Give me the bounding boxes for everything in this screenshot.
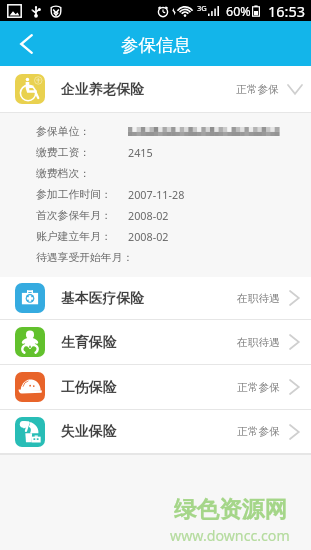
button[interactable]: 生育保险: [0, 320, 311, 364]
staticText: 生育保险: [61, 334, 117, 351]
staticText: 失业保险: [61, 423, 117, 440]
staticText: 基本医疗保险: [61, 290, 144, 307]
staticText: 正常参保: [236, 83, 279, 96]
button[interactable]: 工伤保险: [0, 365, 311, 409]
staticText: 待遇享受开始年月：: [36, 251, 134, 265]
staticText: 缴费工资：: [36, 146, 90, 160]
staticText: www.downcc.com: [170, 526, 290, 545]
button[interactable]: Back: [0, 21, 52, 66]
staticText: 16:53: [268, 1, 306, 21]
staticText: 在职待遇: [237, 336, 280, 349]
staticText: 工伤保险: [61, 379, 117, 396]
staticText: 2415: [128, 145, 153, 160]
staticText: 正常参保: [237, 381, 280, 394]
staticText: 在职待遇: [237, 292, 280, 305]
staticText: 2008-02: [128, 229, 169, 244]
staticText: 首次参保年月：: [36, 209, 112, 223]
staticText: 60%: [226, 3, 251, 20]
staticText: 3G: [197, 3, 207, 13]
staticText: 2007-11-28: [128, 187, 185, 202]
staticText: 参加工作时间：: [36, 188, 112, 202]
button[interactable]: 失业保险: [0, 410, 311, 453]
staticText: 账户建立年月：: [36, 230, 112, 244]
staticText: 企业养老保险: [61, 81, 144, 98]
staticText: 参保单位：: [36, 125, 90, 139]
button[interactable]: 基本医疗保险: [0, 277, 311, 319]
button[interactable]: 企业养老保险: [0, 66, 311, 112]
staticText: 参保信息: [121, 34, 191, 56]
staticText: 2008-02: [128, 208, 169, 223]
staticText: 正常参保: [237, 425, 280, 438]
staticText: 缴费档次：: [36, 167, 90, 181]
staticText: 绿色资源网: [174, 495, 287, 523]
